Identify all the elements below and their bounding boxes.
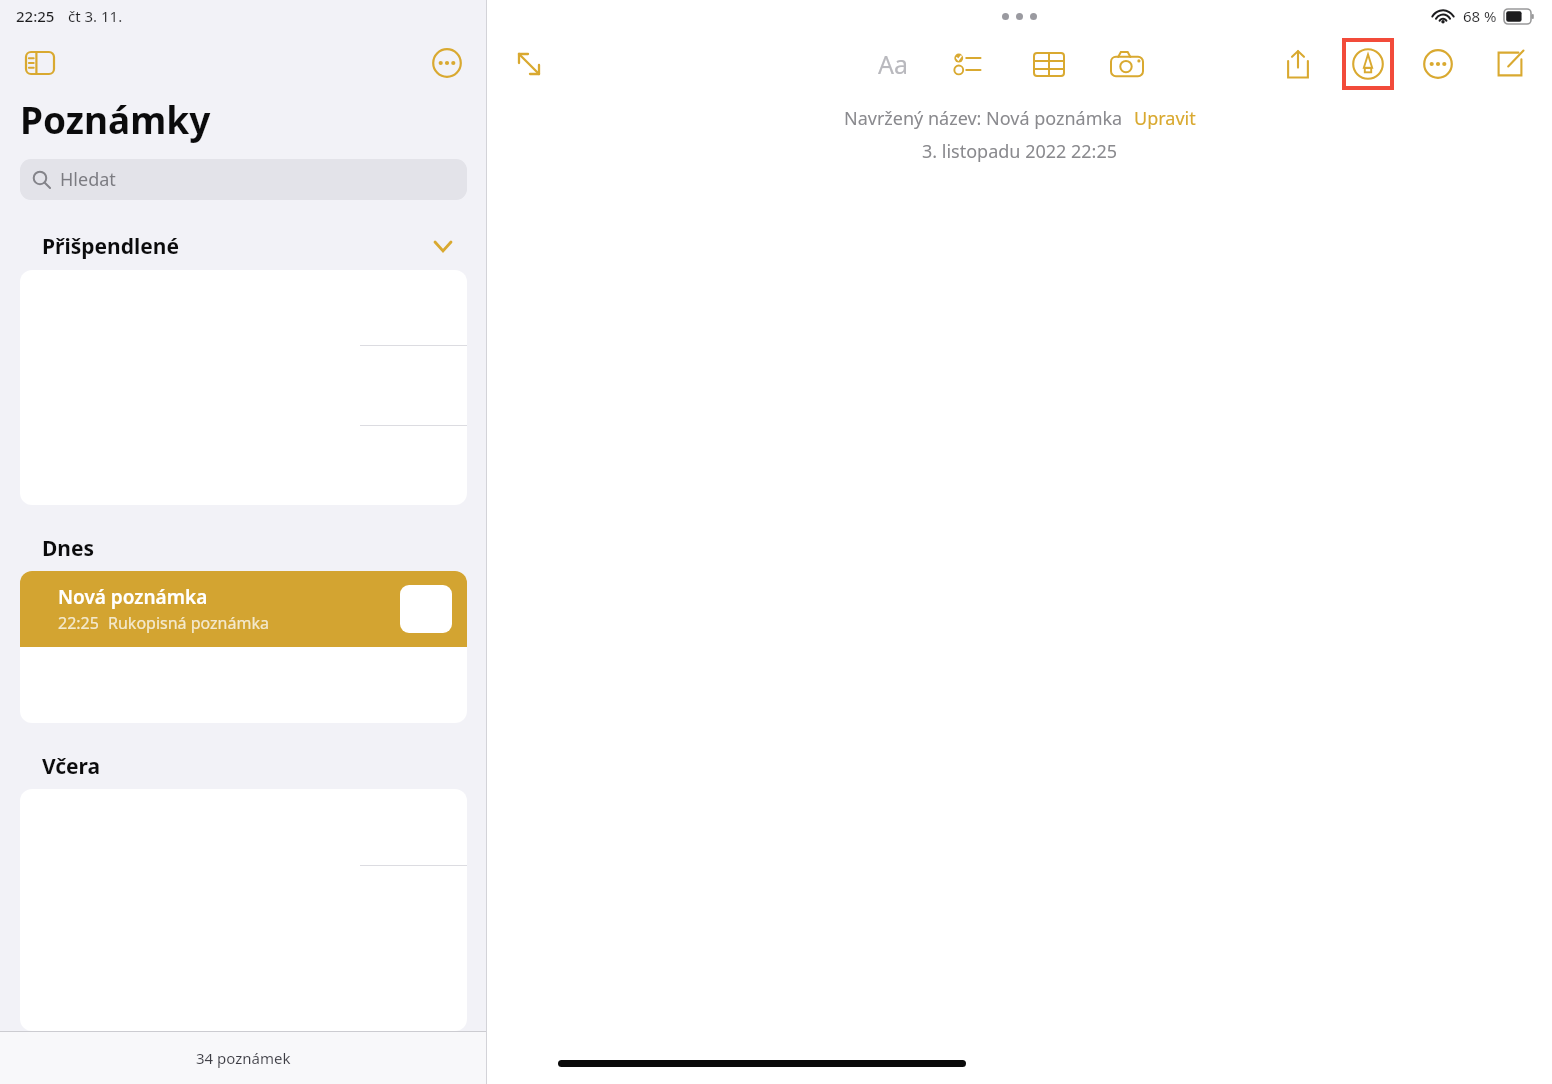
- staticText: Dnes: [42, 534, 95, 563]
- button[interactable]: Upravit: [1134, 106, 1196, 131]
- button[interactable]: Checklist: [943, 36, 999, 92]
- button[interactable]: Collapse pinned: [427, 230, 459, 262]
- staticText: Rukopisná poznámka: [108, 612, 269, 634]
- button[interactable]: New note: [1482, 36, 1538, 92]
- button[interactable]: Expand note: [501, 36, 557, 92]
- staticText: Včera: [42, 752, 101, 781]
- button[interactable]: Aa: [865, 36, 921, 92]
- button[interactable]: Markup: [1346, 42, 1390, 86]
- staticText: 22:25: [16, 6, 55, 26]
- staticText: Přišpendlené: [42, 232, 179, 261]
- staticText: Navržený název: Nová poznámka: [844, 106, 1123, 131]
- button[interactable]: Table: [1021, 36, 1077, 92]
- staticText: Upravit: [1134, 106, 1196, 131]
- staticText: 34 poznámek: [196, 1048, 291, 1068]
- staticText: Poznámky: [20, 94, 211, 144]
- staticText: čt 3. 11.: [68, 6, 123, 26]
- staticText: Hledat: [60, 167, 116, 192]
- staticText: 68 %: [1463, 6, 1497, 26]
- staticText: Nová poznámka: [58, 584, 208, 610]
- staticText: 22:25: [58, 612, 99, 634]
- button[interactable]: Share: [1270, 36, 1326, 92]
- button[interactable]: Nová poznámka: [20, 571, 467, 647]
- button[interactable]: Hledat: [20, 159, 467, 200]
- button[interactable]: Camera: [1099, 36, 1155, 92]
- staticText: Aa: [878, 47, 909, 81]
- button[interactable]: Show sidebar: [12, 35, 68, 91]
- staticText: 3. listopadu 2022 22:25: [922, 139, 1118, 164]
- button[interactable]: More options: [419, 35, 475, 91]
- button[interactable]: More: [1410, 36, 1466, 92]
